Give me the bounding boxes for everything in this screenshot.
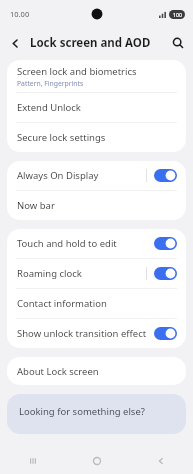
staticText: Secure lock settings (17, 131, 106, 144)
button[interactable]: Contact information (7, 289, 186, 318)
button[interactable]: Extend Unlock (7, 93, 186, 122)
button[interactable]: About Lock screen (7, 357, 186, 385)
button[interactable]: Secure lock settings (7, 123, 186, 152)
button[interactable]: Touch and hold to edit (7, 229, 186, 258)
staticText: Pattern, Fingerprints (17, 79, 84, 88)
button[interactable]: Now bar (7, 191, 186, 220)
staticText: Lock screen and AOD (30, 35, 163, 51)
button[interactable]: Roaming clock (7, 259, 186, 288)
button[interactable]: Show unlock transition effect (7, 319, 186, 348)
button[interactable]: Search (163, 28, 193, 58)
button[interactable]: Always On Display (7, 161, 186, 190)
staticText: Now bar (17, 199, 55, 212)
button[interactable]: Looking for something else? (7, 394, 186, 434)
staticText: Contact information (17, 297, 107, 310)
staticText: 100 (173, 11, 182, 18)
staticText: Roaming clock (17, 267, 82, 280)
button[interactable]: Back (0, 28, 30, 58)
staticText: Looking for something else? (19, 405, 145, 418)
button[interactable]: Recent apps (0, 448, 65, 474)
staticText: Always On Display (17, 169, 99, 182)
staticText: About Lock screen (17, 365, 99, 378)
staticText: 10.00 (10, 9, 30, 19)
button[interactable]: Screen lock and biometrics (7, 60, 186, 92)
button[interactable]: Back (129, 448, 193, 474)
staticText: Screen lock and biometrics (17, 65, 137, 78)
staticText: Extend Unlock (17, 101, 81, 114)
staticText: Touch and hold to edit (17, 237, 117, 250)
staticText: Show unlock transition effect (17, 327, 147, 340)
button[interactable]: Home (65, 448, 129, 474)
